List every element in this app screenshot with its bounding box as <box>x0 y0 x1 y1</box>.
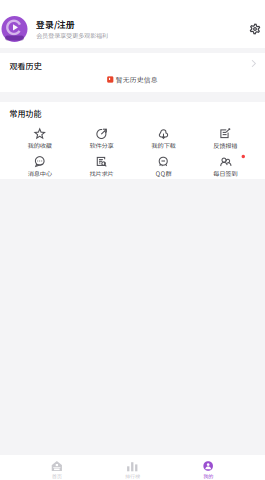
button[interactable]: QQ群 <box>132 156 194 178</box>
button[interactable]: 我的下载 <box>132 128 194 150</box>
staticText: 首页 <box>52 472 62 480</box>
staticText: 我的下载 <box>151 141 175 150</box>
button[interactable]: 我的 <box>170 460 246 480</box>
staticText: 反馈报错 <box>213 141 237 150</box>
button[interactable]: 反馈报错 <box>194 128 256 150</box>
button[interactable]: 观看历史 <box>0 53 265 74</box>
staticText: 找片求片 <box>90 169 114 178</box>
button[interactable]: 软件分享 <box>71 128 132 150</box>
staticText: 登录/注册 <box>36 18 75 30</box>
button[interactable]: 首页 <box>19 460 95 480</box>
staticText: 软件分享 <box>90 141 114 150</box>
staticText: 消息中心 <box>28 169 52 178</box>
button[interactable]: 设置 <box>246 20 264 38</box>
staticText: QQ群 <box>155 169 171 178</box>
staticText: 会员登录享受更多观影福利 <box>36 31 108 40</box>
staticText: 排行榜 <box>125 472 140 480</box>
button[interactable]: 每日签到 <box>194 156 256 178</box>
button[interactable]: 排行榜 <box>95 460 170 480</box>
staticText: 暂无历史信息 <box>116 75 158 84</box>
button[interactable]: 消息中心 <box>9 156 71 178</box>
staticText: 观看历史 <box>9 60 41 71</box>
staticText: 每日签到 <box>213 169 237 178</box>
staticText: 常用功能 <box>9 107 41 119</box>
button[interactable]: 我的收藏 <box>9 128 71 150</box>
button[interactable]: 找片求片 <box>71 156 132 178</box>
staticText: 我的 <box>203 472 213 480</box>
staticText: 我的收藏 <box>28 141 52 150</box>
